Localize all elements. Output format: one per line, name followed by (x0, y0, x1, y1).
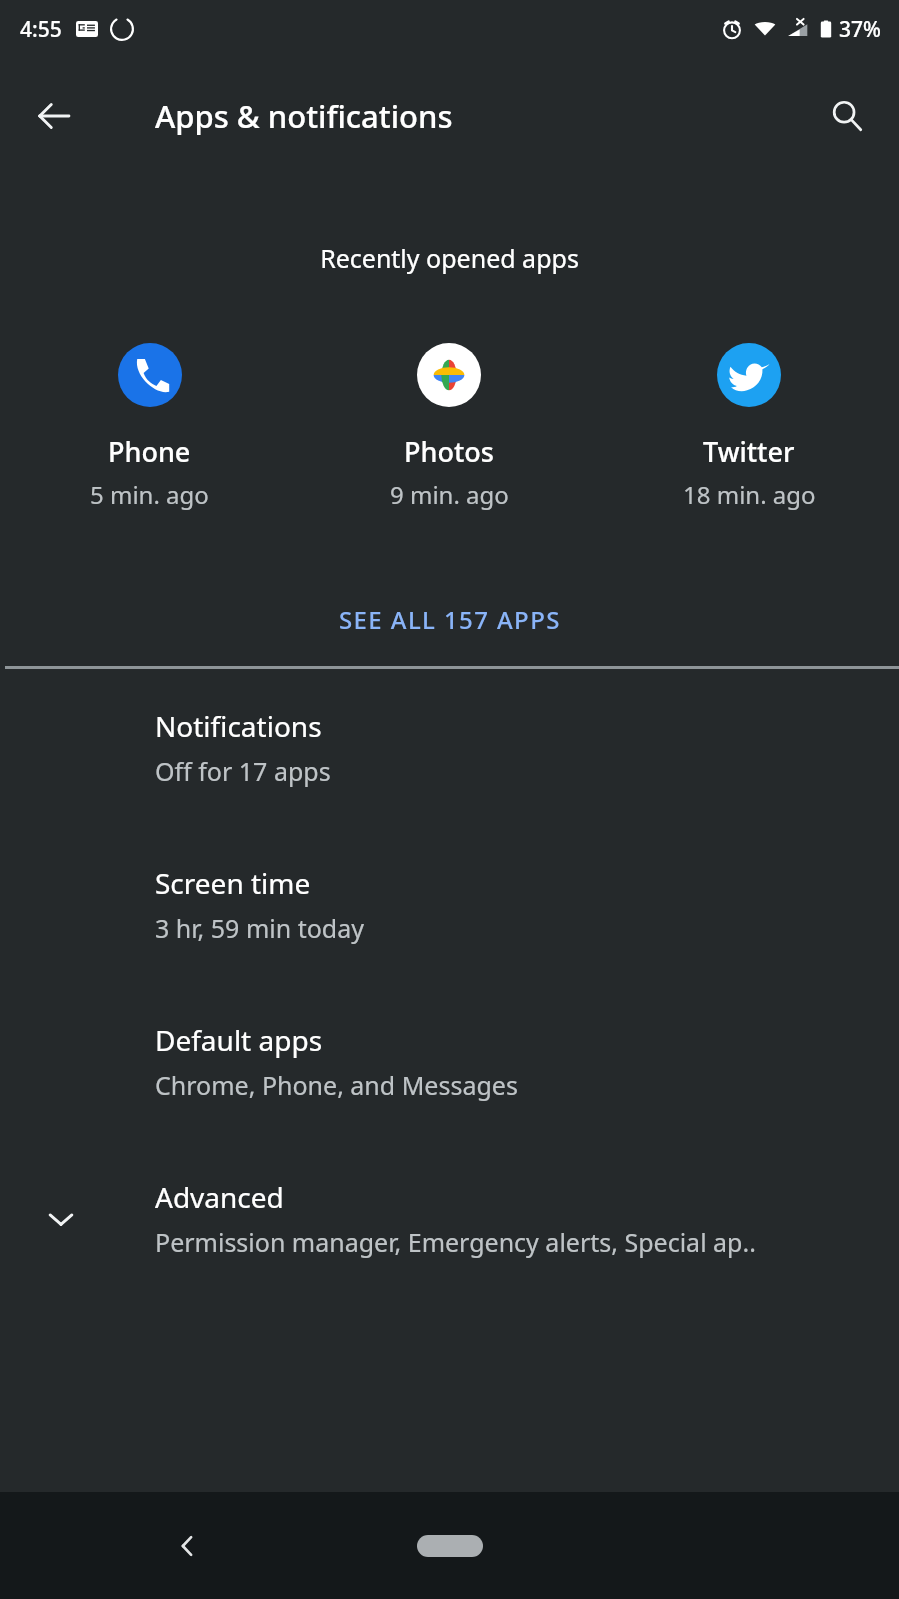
staticText: 37% (839, 15, 881, 44)
button[interactable]: Phone (0, 337, 299, 517)
staticText: Apps & notifications (155, 95, 453, 137)
button[interactable]: Twitter (599, 337, 899, 517)
staticText: SEE ALL 157 APPS (339, 603, 561, 636)
button[interactable]: Search (811, 80, 883, 152)
staticText: Advanced (155, 1178, 284, 1216)
staticText: Screen time (155, 864, 311, 902)
staticText: 3 hr, 59 min today (155, 911, 364, 945)
staticText: Off for 17 apps (155, 754, 331, 788)
staticText: Photos (404, 433, 494, 470)
staticText: Twitter (703, 433, 795, 470)
button[interactable]: Back (18, 80, 90, 152)
button[interactable]: Screen time (0, 826, 899, 983)
staticText: 4:55 (20, 15, 62, 44)
staticText: Default apps (155, 1021, 323, 1059)
staticText: Phone (108, 433, 191, 470)
button[interactable]: Back (155, 1514, 219, 1578)
staticText: 9 min. ago (390, 478, 509, 511)
button[interactable]: SEE ALL 157 APPS (317, 593, 583, 646)
staticText: Notifications (155, 707, 322, 745)
button[interactable]: Photos (299, 337, 599, 517)
staticText: 18 min. ago (683, 478, 816, 511)
button[interactable]: Default apps (0, 983, 899, 1140)
staticText: 5 min. ago (90, 478, 209, 511)
staticText: Permission manager, Emergency alerts, Sp… (155, 1225, 756, 1259)
button[interactable]: Notifications (0, 669, 899, 826)
button[interactable]: Home (417, 1535, 483, 1557)
staticText: Recently opened apps (0, 241, 899, 275)
button[interactable]: Advanced (0, 1140, 899, 1297)
staticText: Chrome, Phone, and Messages (155, 1068, 518, 1102)
